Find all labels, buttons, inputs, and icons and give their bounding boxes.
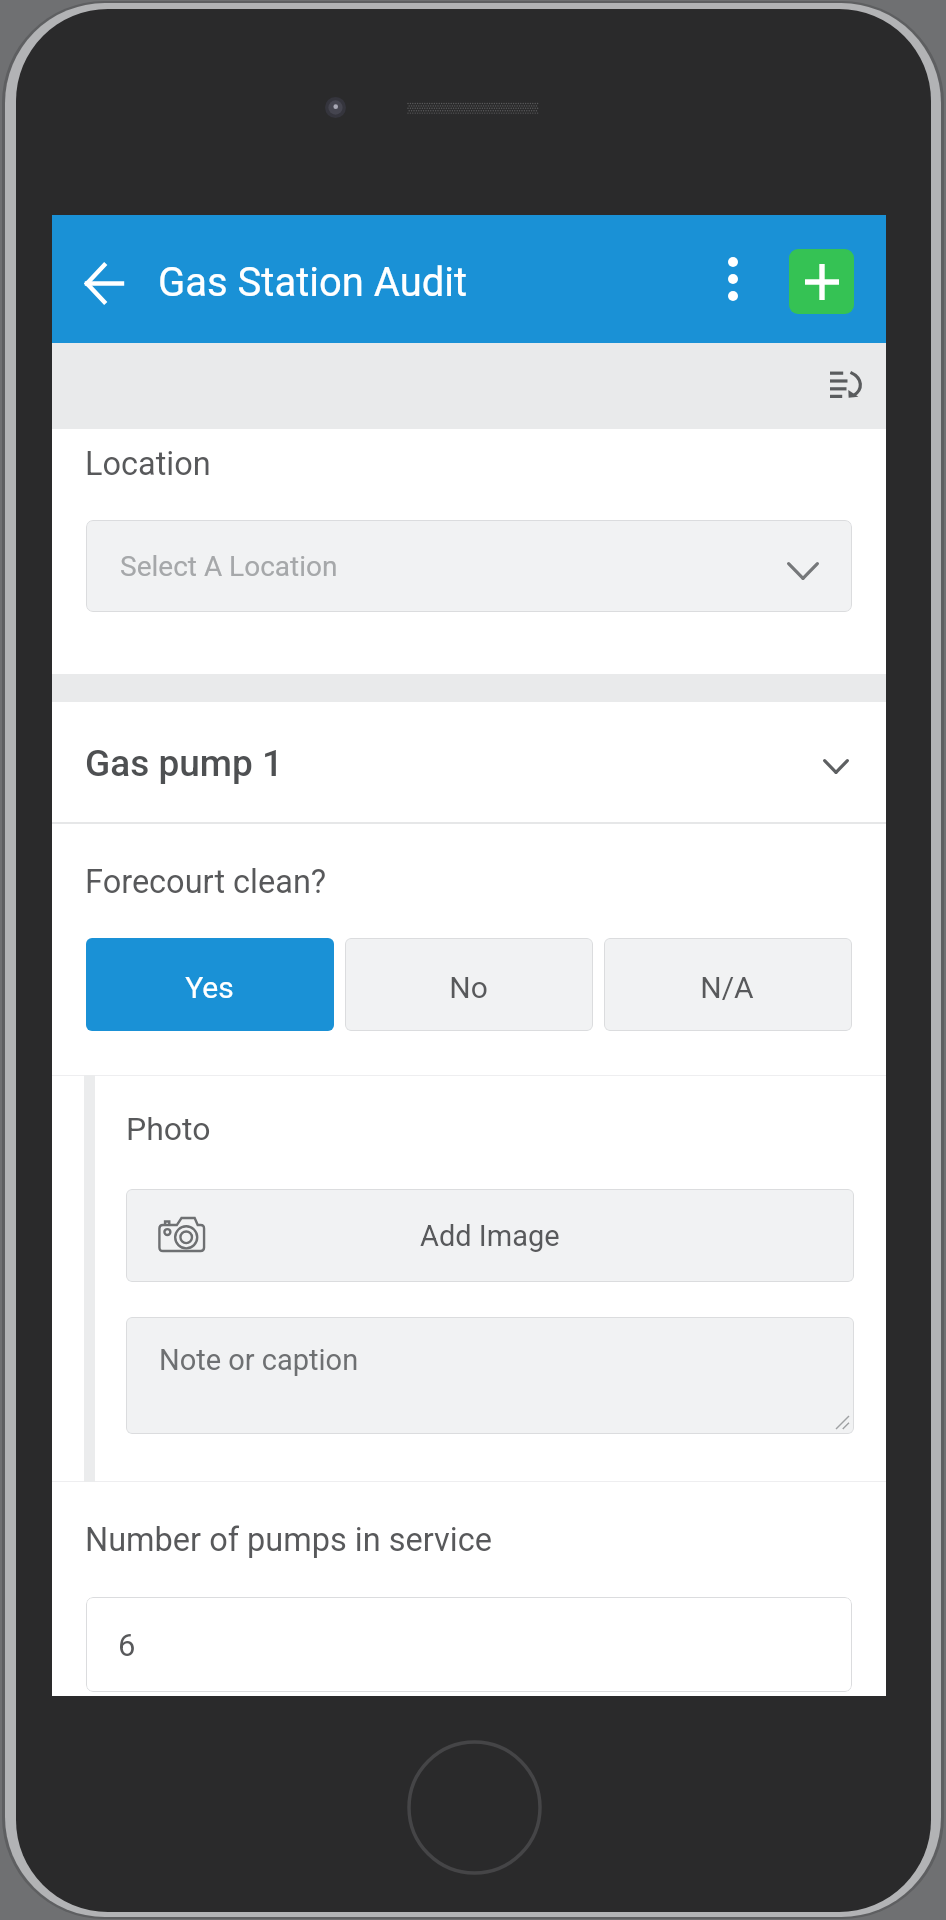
staticText: Gas Station Audit <box>158 259 468 306</box>
staticText: Photo <box>126 1110 211 1148</box>
staticText: 6 <box>118 1627 136 1663</box>
staticText: Note or caption <box>159 1343 359 1377</box>
staticText: N/A <box>700 970 754 1005</box>
button[interactable]: 6 <box>86 1597 852 1692</box>
staticText: Location <box>85 445 211 483</box>
button[interactable]: Add <box>789 249 854 314</box>
button[interactable]: No <box>345 938 593 1031</box>
staticText: Forecourt clean? <box>85 863 327 901</box>
staticText: Gas pump 1 <box>85 742 284 785</box>
staticText: Yes <box>185 970 234 1005</box>
button[interactable]: Add Image <box>126 1189 854 1282</box>
button[interactable]: Note or caption <box>126 1317 854 1434</box>
button[interactable]: Gas pump 1 <box>52 702 886 824</box>
button[interactable]: Back <box>69 249 137 317</box>
button[interactable]: Reorder sections <box>820 358 872 410</box>
button[interactable]: More options <box>700 246 766 312</box>
button[interactable]: N/A <box>604 938 852 1031</box>
button[interactable]: Yes <box>86 938 334 1031</box>
staticText: Add Image <box>420 1219 560 1253</box>
staticText: No <box>449 970 488 1005</box>
button[interactable]: Select A Location <box>86 520 852 612</box>
staticText: Number of pumps in service <box>85 1521 492 1559</box>
staticText: Select A Location <box>120 550 338 583</box>
